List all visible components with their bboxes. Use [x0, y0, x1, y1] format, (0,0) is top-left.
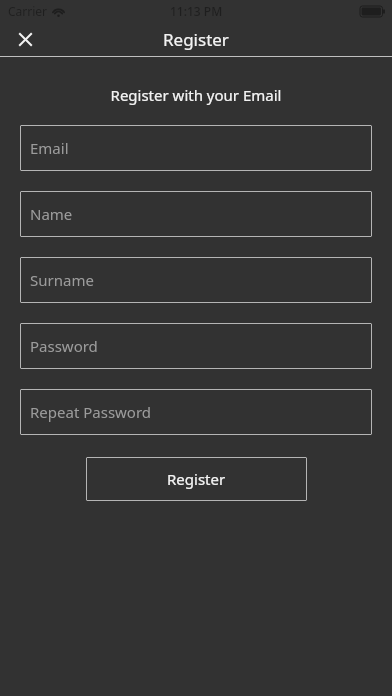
button[interactable]: Register: [86, 457, 307, 501]
button[interactable]: Close: [0, 22, 44, 56]
staticText: Password: [30, 336, 98, 356]
button[interactable]: Surname: [20, 257, 372, 303]
button[interactable]: Password: [20, 323, 372, 369]
button[interactable]: Name: [20, 191, 372, 237]
staticText: 11:13 PM: [170, 3, 223, 19]
staticText: Register: [163, 28, 229, 51]
staticText: Repeat Password: [30, 402, 152, 422]
staticText: Register: [167, 469, 226, 489]
staticText: Email: [30, 138, 69, 158]
staticText: Carrier: [8, 3, 48, 19]
button[interactable]: Repeat Password: [20, 389, 372, 435]
staticText: Name: [30, 204, 73, 224]
staticText: Surname: [30, 270, 94, 290]
staticText: Register with your Email: [0, 85, 392, 105]
button[interactable]: Email: [20, 125, 372, 171]
